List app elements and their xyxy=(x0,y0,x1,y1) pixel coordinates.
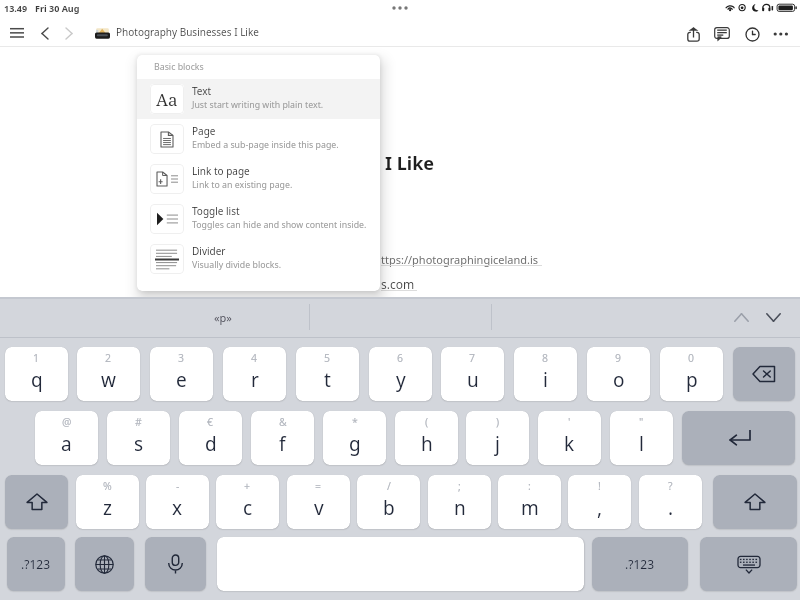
staticText: t xyxy=(324,367,331,393)
button[interactable]: 2 xyxy=(77,347,140,401)
staticText: 13.49 xyxy=(4,2,28,14)
button[interactable]: % xyxy=(76,475,139,529)
staticText: ! xyxy=(598,479,601,493)
staticText: g xyxy=(349,431,361,457)
button[interactable]: Divider xyxy=(137,239,380,279)
staticText: 2 xyxy=(105,351,112,365)
staticText: Embed a sub-page inside this page. xyxy=(192,139,339,151)
button[interactable]: Comments xyxy=(710,22,734,46)
button[interactable]: 8 xyxy=(514,347,577,401)
button[interactable]: Backspace xyxy=(733,347,795,401)
staticText: = xyxy=(315,479,322,493)
staticText: a xyxy=(61,431,72,457)
button[interactable]: 7 xyxy=(441,347,504,401)
staticText: n xyxy=(454,495,466,521)
staticText: Link to an existing page. xyxy=(192,179,293,191)
staticText: y xyxy=(396,367,406,393)
staticText: e xyxy=(176,367,187,393)
button[interactable]: 0 xyxy=(660,347,723,401)
staticText: 4 xyxy=(251,351,258,365)
button[interactable]: & xyxy=(251,411,314,465)
button[interactable]: ? xyxy=(639,475,702,529)
staticText: ( xyxy=(425,415,429,429)
button[interactable]: ) xyxy=(466,411,529,465)
staticText: m xyxy=(521,495,539,521)
staticText: - xyxy=(176,479,180,493)
button[interactable]: Back xyxy=(34,21,56,45)
staticText: ) xyxy=(496,415,500,429)
staticText: 6 xyxy=(397,351,404,365)
button[interactable]: / xyxy=(357,475,420,529)
button[interactable]: + xyxy=(216,475,279,529)
staticText: d xyxy=(205,431,217,457)
button[interactable]: 5 xyxy=(296,347,359,401)
staticText: 8 xyxy=(542,351,549,365)
staticText: # xyxy=(135,415,142,429)
button[interactable]: Toggle list xyxy=(137,199,380,239)
button[interactable]: - xyxy=(146,475,209,529)
staticText: 9 xyxy=(615,351,622,365)
staticText: j xyxy=(495,431,500,457)
button[interactable]: : xyxy=(498,475,561,529)
button[interactable]: Shift xyxy=(713,475,797,529)
staticText: Divider xyxy=(192,244,226,258)
button[interactable]: «p» xyxy=(160,297,285,337)
button[interactable]: # xyxy=(107,411,170,465)
button[interactable]: Page xyxy=(137,119,380,159)
button[interactable]: Return xyxy=(682,411,795,465)
button[interactable]: Symbols xyxy=(7,537,65,591)
staticText: Aa xyxy=(156,88,178,111)
button[interactable]: ! xyxy=(568,475,631,529)
staticText: s xyxy=(134,431,144,457)
button[interactable]: * xyxy=(323,411,386,465)
staticText: ; xyxy=(458,479,461,493)
button[interactable]: Forward xyxy=(58,21,80,45)
button[interactable]: 3 xyxy=(150,347,213,401)
button[interactable]: ( xyxy=(395,411,458,465)
button[interactable]: Symbols xyxy=(592,537,688,591)
staticText: & xyxy=(279,415,287,429)
button[interactable]: ; xyxy=(428,475,491,529)
staticText: o xyxy=(613,367,625,393)
button[interactable]: Next xyxy=(760,304,786,330)
staticText: % xyxy=(103,479,112,493)
button[interactable]: Dictation xyxy=(145,537,206,591)
staticText: Photography Businesses I Like xyxy=(116,25,259,39)
staticText: q xyxy=(31,367,43,393)
staticText: 0 xyxy=(688,351,695,365)
button[interactable]: Hide keyboard xyxy=(700,537,797,591)
staticText: .?123 xyxy=(625,556,655,572)
staticText: Text xyxy=(192,84,212,98)
staticText: z xyxy=(103,495,112,521)
staticText: : xyxy=(528,479,531,493)
button[interactable]: Share xyxy=(681,22,705,46)
button[interactable]: Link to page xyxy=(137,159,380,199)
button[interactable]: @ xyxy=(35,411,98,465)
staticText: * xyxy=(352,415,358,429)
button[interactable]: Previous xyxy=(728,304,754,330)
staticText: c xyxy=(243,495,253,521)
staticText: " xyxy=(639,415,644,429)
button[interactable]: 1 xyxy=(5,347,68,401)
button[interactable]: Photography Businesses I Like xyxy=(116,25,259,39)
button[interactable]: 9 xyxy=(587,347,650,401)
button[interactable]: ' xyxy=(538,411,601,465)
button[interactable]: 4 xyxy=(223,347,286,401)
button[interactable]: Menu xyxy=(4,21,30,45)
staticText: @ xyxy=(62,415,72,429)
staticText: h xyxy=(421,431,433,457)
button[interactable]: " xyxy=(610,411,673,465)
button[interactable]: More options xyxy=(769,22,793,46)
button[interactable]: € xyxy=(179,411,242,465)
button[interactable]: Aa xyxy=(137,79,380,119)
button[interactable]: 6 xyxy=(369,347,432,401)
button[interactable]: Language xyxy=(75,537,134,591)
staticText: Toggles can hide and show content inside… xyxy=(192,219,367,231)
staticText: ' xyxy=(568,415,571,429)
button[interactable]: Shift xyxy=(5,475,68,529)
button[interactable]: = xyxy=(287,475,350,529)
staticText: u xyxy=(467,367,479,393)
staticText: r xyxy=(251,367,259,393)
button[interactable]: History xyxy=(740,22,764,46)
